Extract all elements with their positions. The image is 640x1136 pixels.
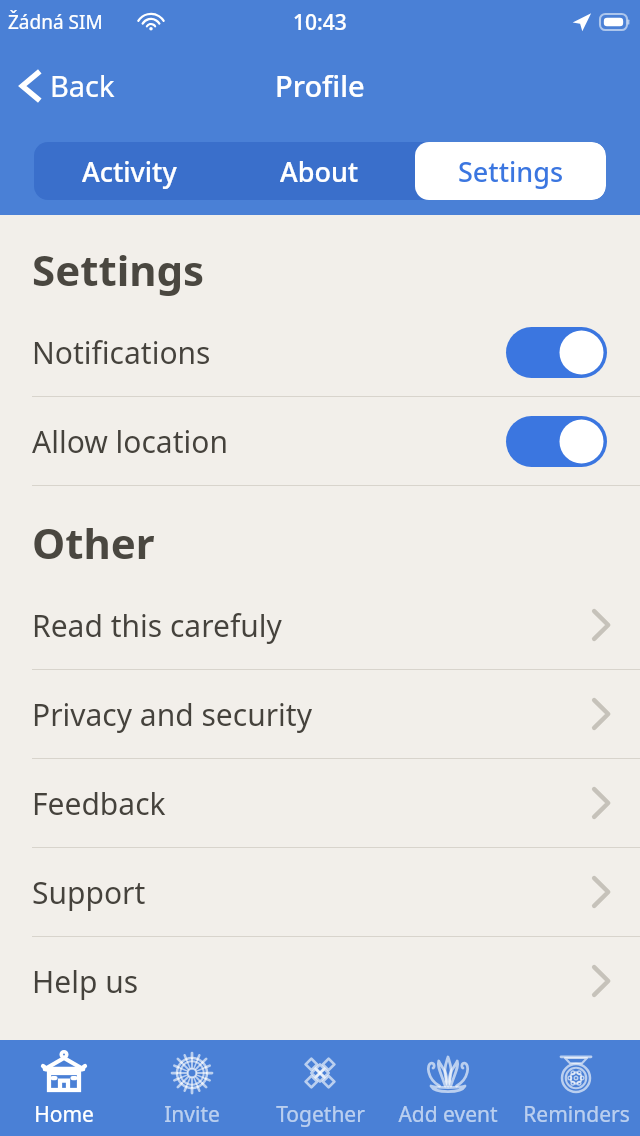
button[interactable]: Home — [0, 1040, 128, 1136]
button[interactable]: Reminders — [512, 1040, 640, 1136]
staticText: Settings — [32, 241, 205, 298]
button[interactable]: Back — [14, 60, 119, 111]
staticText: Žádná SIM — [8, 9, 103, 35]
staticText: Notifications — [32, 332, 506, 373]
staticText: Help us — [32, 961, 592, 1002]
button[interactable]: Settings — [415, 142, 606, 200]
button[interactable]: Together — [256, 1040, 384, 1136]
button[interactable]: Support — [0, 848, 640, 936]
button[interactable]: About — [224, 142, 415, 200]
staticText: Read this carefuly — [32, 605, 592, 646]
staticText: Privacy and security — [32, 694, 592, 735]
staticText: Reminders — [523, 1100, 630, 1129]
staticText: Allow location — [32, 421, 506, 462]
staticText: About — [280, 153, 359, 190]
button[interactable]: Notifications — [0, 308, 640, 396]
staticText: Feedback — [32, 783, 592, 824]
button[interactable]: Activity — [34, 142, 224, 200]
button[interactable]: Add event — [384, 1040, 512, 1136]
staticText: Add event — [398, 1100, 498, 1129]
staticText: Together — [276, 1100, 365, 1129]
staticText: Home — [34, 1100, 94, 1129]
button[interactable]: Feedback — [0, 759, 640, 847]
button[interactable]: Help us — [0, 937, 640, 1025]
button[interactable]: Privacy and security — [0, 670, 640, 758]
staticText: Invite — [164, 1100, 220, 1129]
staticText: Back — [50, 66, 115, 105]
staticText: 10:43 — [293, 8, 347, 37]
staticText: Other — [32, 514, 155, 571]
button[interactable]: Invite — [128, 1040, 256, 1136]
staticText: Settings — [458, 153, 564, 190]
button[interactable]: Allow location — [0, 397, 640, 485]
staticText: Support — [32, 872, 592, 913]
staticText: Profile — [275, 66, 365, 105]
staticText: Activity — [82, 153, 177, 190]
button[interactable]: Read this carefuly — [0, 581, 640, 669]
